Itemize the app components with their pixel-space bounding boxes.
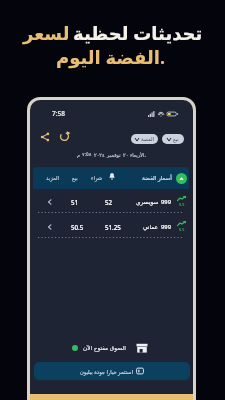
- staticText: م: [77, 152, 81, 158]
- staticText: 0.5: [179, 202, 185, 207]
- button[interactable]: 51: [33, 189, 189, 214]
- staticText: لسعر: [23, 23, 70, 44]
- button[interactable]: بيع: [162, 134, 184, 144]
- staticText: استثمر خيارا جودة بيليون: [80, 368, 133, 375]
- button[interactable]: 50.5: [33, 214, 189, 239]
- staticText: المزيد: [46, 175, 60, 181]
- staticText: سويسري: [136, 199, 159, 206]
- staticText: 999: [161, 198, 171, 206]
- staticText: 999: [161, 223, 171, 231]
- staticText: عماني: [143, 224, 159, 231]
- staticText: الأربعاء،: [130, 152, 146, 158]
- button[interactable]: Refresh: [58, 130, 71, 143]
- staticText: تحديثات لحظية: [73, 21, 203, 46]
- staticText: السوق مفتوح الآن: [83, 344, 126, 352]
- staticText: 7:58: [52, 109, 65, 118]
- staticText: 50.5: [71, 223, 84, 231]
- staticText: ٢٠٢٤: [94, 152, 105, 158]
- staticText: ٢٠: [123, 152, 129, 158]
- staticText: 51: [71, 198, 79, 206]
- staticText: بيع: [72, 175, 78, 181]
- staticText: شراء: [91, 175, 103, 181]
- staticText: ٧:٥٨: [82, 151, 92, 158]
- staticText: الفضة: [141, 136, 154, 142]
- button[interactable]: استثمر خيارا جودة بيليون: [34, 362, 190, 380]
- staticText: نوفمبر: [107, 152, 121, 158]
- button[interactable]: الفضة: [131, 134, 158, 144]
- staticText: 0.5: [179, 227, 185, 232]
- staticText: 52: [105, 198, 113, 206]
- button[interactable]: Share: [39, 131, 51, 143]
- staticText: الفضة اليوم.: [56, 45, 166, 70]
- staticText: 51.25: [105, 223, 121, 231]
- staticText: بيع: [173, 136, 179, 142]
- staticText: أسعار الفضة: [142, 174, 172, 182]
